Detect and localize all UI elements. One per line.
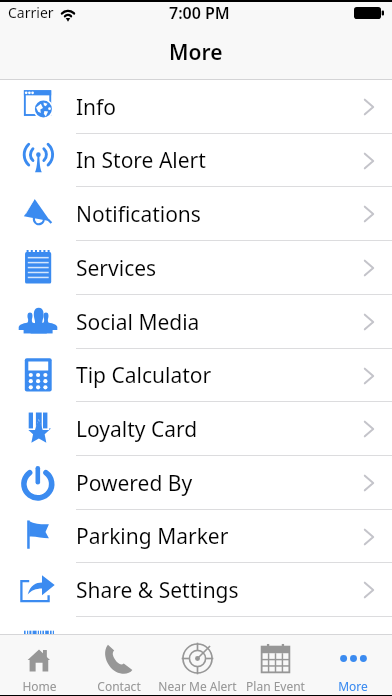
button[interactable]: Contact: [79, 635, 158, 695]
staticText: Tip Calculator: [76, 361, 212, 390]
staticText: 7:00 PM: [169, 2, 230, 22]
staticText: In Store Alert: [76, 146, 206, 175]
staticText: Near Me Alert: [158, 678, 236, 694]
staticText: Powered By: [76, 469, 193, 498]
staticText: Social Media: [76, 308, 200, 337]
button[interactable]: Powered By: [0, 456, 392, 510]
staticText: Info: [76, 93, 117, 122]
button[interactable]: Notifications: [0, 187, 392, 241]
staticText: Notifications: [76, 200, 201, 229]
staticText: Parking Marker: [76, 522, 229, 551]
staticText: Home: [22, 678, 57, 694]
button[interactable]: Social Media: [0, 295, 392, 349]
button[interactable]: In Store Alert: [0, 134, 392, 187]
button[interactable]: Info: [0, 80, 392, 134]
staticText: Contact: [97, 678, 141, 694]
button[interactable]: Scan: [0, 617, 392, 634]
button[interactable]: Share & Settings: [0, 563, 392, 617]
staticText: Share & Settings: [76, 576, 239, 605]
button[interactable]: Tip Calculator: [0, 349, 392, 402]
button[interactable]: Near Me Alert: [158, 635, 236, 695]
staticText: More: [169, 38, 223, 67]
button[interactable]: Parking Marker: [0, 510, 392, 563]
staticText: Plan Event: [246, 678, 305, 694]
button[interactable]: Plan Event: [236, 635, 314, 695]
staticText: More: [338, 678, 368, 694]
button[interactable]: Services: [0, 241, 392, 295]
staticText: Services: [76, 254, 157, 283]
button[interactable]: Loyalty Card: [0, 402, 392, 456]
button[interactable]: Home: [0, 635, 79, 695]
button[interactable]: More: [314, 635, 392, 695]
staticText: Carrier: [8, 3, 54, 22]
staticText: Loyalty Card: [76, 415, 198, 444]
